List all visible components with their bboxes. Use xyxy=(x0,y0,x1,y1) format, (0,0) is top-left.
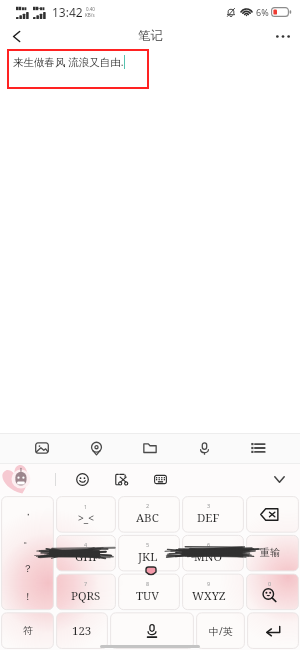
button[interactable] xyxy=(241,497,298,531)
button[interactable]: 5 xyxy=(119,535,176,570)
button[interactable]: Input method xyxy=(0,463,55,495)
staticText: 2 xyxy=(146,502,150,509)
button[interactable]: 6 xyxy=(180,535,237,570)
staticText: GHI xyxy=(75,549,97,565)
staticText: 6 xyxy=(207,541,211,548)
staticText: 8 xyxy=(146,580,150,587)
staticText: 中/英 xyxy=(209,624,233,638)
staticText: >_< xyxy=(78,511,94,525)
staticText: 1 xyxy=(84,503,88,510)
staticText: ， xyxy=(23,505,33,518)
staticText: 5 xyxy=(146,541,150,548)
button[interactable]: 1 xyxy=(57,497,115,531)
button[interactable]: 9 xyxy=(180,574,237,609)
staticText: KB/s xyxy=(85,12,95,18)
staticText: 6% xyxy=(256,6,269,18)
button[interactable]: Back xyxy=(0,24,32,48)
staticText: 符 xyxy=(23,624,33,637)
staticText: 3 xyxy=(207,502,211,509)
staticText: ？ xyxy=(23,562,33,575)
staticText: 0 xyxy=(268,580,272,587)
button[interactable]: Checklist xyxy=(246,436,270,460)
staticText: PQRS xyxy=(71,588,101,604)
staticText: DEF xyxy=(197,510,220,526)
button[interactable]: ， xyxy=(2,497,53,609)
button[interactable]: 8 xyxy=(119,574,176,609)
button[interactable]: 2 xyxy=(119,497,176,531)
button[interactable]: 123 xyxy=(57,613,107,648)
staticText: 13:42 xyxy=(52,4,83,20)
button[interactable] xyxy=(248,613,298,648)
staticText: 笔记 xyxy=(138,28,163,44)
staticText: ABC xyxy=(136,510,159,526)
staticText: MNO xyxy=(194,549,223,565)
button[interactable]: 4 xyxy=(57,535,115,570)
button[interactable]: Emoji xyxy=(71,468,93,490)
staticText: 123 xyxy=(72,623,92,639)
staticText: TUV xyxy=(136,588,160,604)
staticText: 0.40 xyxy=(86,6,95,12)
staticText: 来生做春风 流浪又自由. xyxy=(13,55,124,69)
staticText: 。 xyxy=(23,533,33,546)
button[interactable]: 0 xyxy=(241,574,298,609)
staticText: 9 xyxy=(207,580,211,587)
staticText: 4 xyxy=(84,541,88,548)
button[interactable]: Folder xyxy=(138,436,162,460)
button[interactable] xyxy=(111,613,193,648)
button[interactable]: Keyboard layout xyxy=(149,468,171,490)
button[interactable]: Location xyxy=(84,436,108,460)
button[interactable]: 7 xyxy=(57,574,115,609)
staticText: 7 xyxy=(84,580,88,587)
button[interactable]: Insert image xyxy=(30,436,54,460)
button[interactable]: Voice input xyxy=(192,436,216,460)
staticText: ！ xyxy=(23,590,33,603)
staticText: 重输 xyxy=(260,546,280,559)
button[interactable]: Clipboard xyxy=(110,468,132,490)
button[interactable]: 重输 xyxy=(241,535,298,570)
button[interactable]: Hide keyboard xyxy=(264,464,294,494)
button[interactable]: 中/英 xyxy=(197,613,244,648)
button[interactable]: 符 xyxy=(2,613,53,648)
staticText: JKL xyxy=(138,549,158,565)
button[interactable]: More options xyxy=(266,24,300,48)
button[interactable]: 3 xyxy=(180,497,237,531)
staticText: WXYZ xyxy=(192,588,226,604)
